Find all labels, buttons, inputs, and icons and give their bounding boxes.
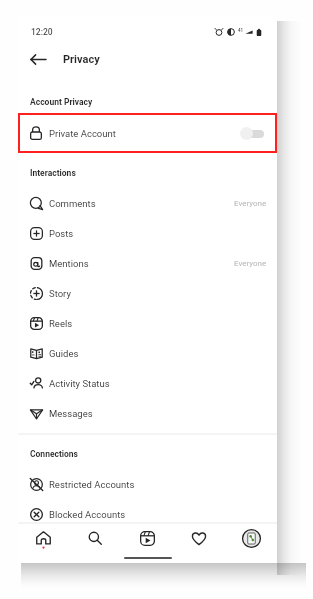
staticText: Privacy bbox=[63, 53, 100, 66]
staticText: Account Privacy bbox=[30, 97, 93, 107]
staticText: Activity Status bbox=[49, 378, 110, 389]
staticText: 41 bbox=[238, 28, 244, 33]
staticText: Blocked Accounts bbox=[49, 509, 126, 520]
button[interactable]: Profile bbox=[225, 524, 277, 552]
button[interactable]: Mentions bbox=[18, 248, 277, 278]
staticText: Guides bbox=[49, 348, 79, 359]
button[interactable]: Posts bbox=[18, 218, 277, 248]
button[interactable]: Private account toggle bbox=[240, 127, 264, 140]
button[interactable]: Reels bbox=[121, 524, 173, 552]
button[interactable]: Back bbox=[27, 48, 49, 70]
button[interactable]: Private Account bbox=[18, 114, 277, 152]
button[interactable]: Restricted Accounts bbox=[18, 469, 277, 499]
button[interactable]: Home bbox=[18, 524, 69, 552]
button[interactable]: Blocked Accounts bbox=[18, 499, 277, 529]
staticText: Restricted Accounts bbox=[49, 479, 135, 490]
button[interactable]: Reels bbox=[18, 308, 277, 338]
staticText: Story bbox=[49, 288, 71, 299]
button[interactable]: Messages bbox=[18, 398, 277, 428]
staticText: Messages bbox=[49, 408, 93, 419]
staticText: Reels bbox=[49, 318, 73, 329]
staticText: Everyone bbox=[234, 259, 267, 268]
button[interactable]: Comments bbox=[18, 188, 277, 218]
staticText: Interactions bbox=[30, 168, 76, 178]
button[interactable]: Guides bbox=[18, 338, 277, 368]
staticText: Mentions bbox=[49, 258, 89, 269]
button[interactable]: Search bbox=[69, 524, 121, 552]
staticText: Comments bbox=[49, 198, 96, 209]
staticText: Posts bbox=[49, 228, 74, 239]
staticText: Private Account bbox=[49, 128, 116, 139]
button[interactable]: Activity bbox=[173, 524, 225, 552]
staticText: Everyone bbox=[234, 199, 267, 208]
button[interactable]: Activity Status bbox=[18, 368, 277, 398]
staticText: 12:20 bbox=[31, 27, 53, 37]
staticText: Connections bbox=[30, 449, 78, 459]
button[interactable]: Story bbox=[18, 278, 277, 308]
